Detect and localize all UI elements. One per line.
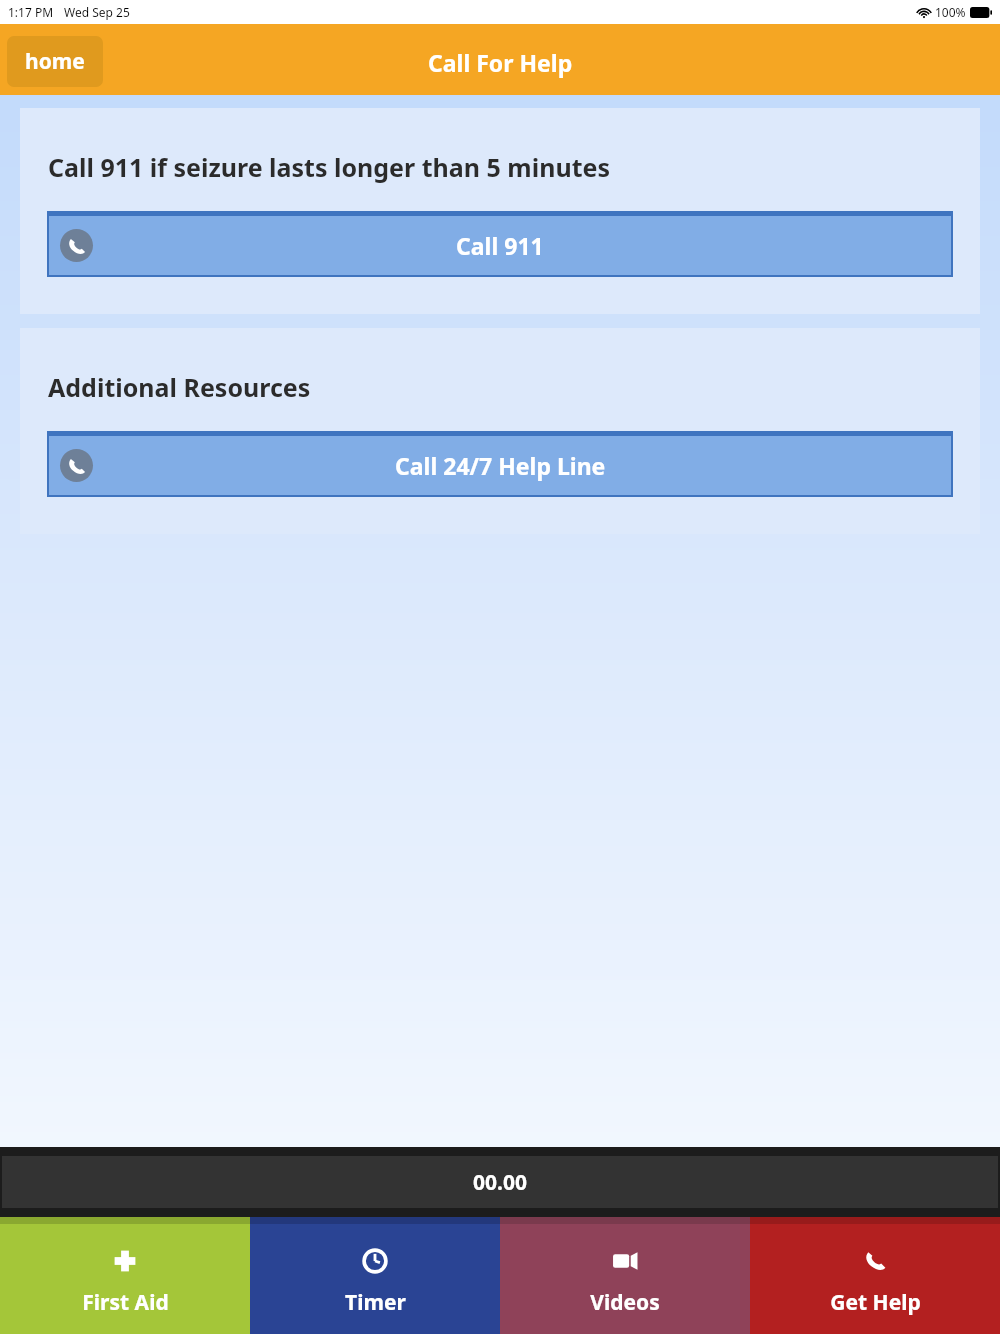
other: First Aid	[112, 1248, 138, 1274]
staticText: Call 911	[456, 230, 544, 261]
button[interactable]: Get Help	[750, 1217, 1000, 1334]
staticText: 1:17 PM	[8, 4, 54, 20]
staticText: Timer	[345, 1288, 406, 1317]
button[interactable]: Call 24/7 Help Line	[49, 436, 951, 495]
staticText: Call 24/7 Help Line	[395, 450, 606, 481]
button[interactable]: Videos	[500, 1217, 750, 1334]
staticText: Additional Resources	[48, 370, 311, 404]
other: Get Help	[862, 1248, 888, 1274]
staticText: 00.00	[473, 1168, 527, 1197]
staticText: Get Help	[830, 1288, 921, 1317]
staticText: 100%	[935, 4, 966, 20]
staticText: First Aid	[82, 1288, 169, 1317]
button[interactable]: Call 911	[49, 216, 951, 275]
staticText: home	[25, 47, 85, 76]
button[interactable]: First Aid	[0, 1217, 250, 1334]
other: Timer	[362, 1248, 388, 1274]
staticText: Wed Sep 25	[64, 4, 130, 20]
button[interactable]: Timer	[250, 1217, 500, 1334]
button[interactable]: home	[7, 36, 103, 87]
staticText: Videos	[590, 1288, 660, 1317]
staticText: Call For Help	[428, 47, 573, 78]
staticText: Call 911 if seizure lasts longer than 5 …	[48, 150, 611, 184]
other: Videos	[612, 1248, 638, 1274]
